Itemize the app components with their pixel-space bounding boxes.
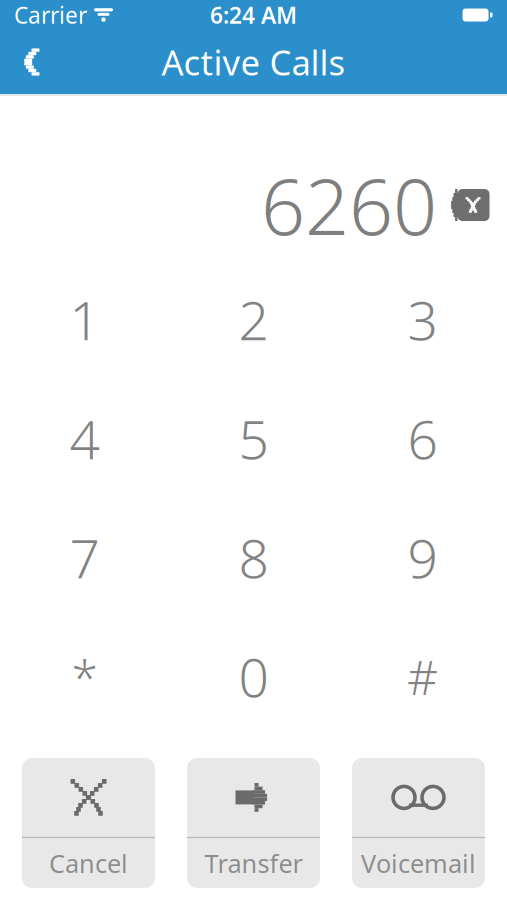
staticText: Carrier — [14, 0, 87, 30]
staticText: 9 — [407, 522, 437, 593]
staticText: Cancel — [49, 846, 128, 880]
button[interactable]: 2 — [169, 260, 338, 379]
staticText: 4 — [69, 403, 99, 474]
button[interactable]: Delete — [437, 177, 499, 233]
staticText: 6 — [407, 403, 437, 474]
button[interactable]: 3 — [338, 260, 507, 379]
staticText: # — [407, 645, 438, 708]
button[interactable]: 1 — [0, 260, 169, 379]
staticText: Voicemail — [361, 846, 476, 880]
staticText: 2 — [238, 284, 268, 355]
button[interactable]: * — [0, 617, 169, 736]
button[interactable]: 8 — [169, 498, 338, 617]
staticText: 3 — [407, 284, 437, 355]
staticText: 6:24 AM — [210, 0, 297, 30]
staticText: 1 — [69, 284, 99, 355]
button[interactable]: Cancel — [22, 758, 155, 888]
staticText: * — [71, 645, 97, 708]
button[interactable]: 9 — [338, 498, 507, 617]
staticText: 7 — [69, 522, 99, 593]
staticText: 0 — [238, 641, 268, 712]
button[interactable]: 5 — [169, 379, 338, 498]
button[interactable]: 4 — [0, 379, 169, 498]
button[interactable]: Transfer — [187, 758, 320, 888]
button[interactable]: 0 — [169, 617, 338, 736]
staticText: 6260 — [261, 154, 437, 256]
staticText: 5 — [238, 403, 268, 474]
button[interactable]: Back — [0, 36, 58, 88]
staticText: Active Calls — [161, 39, 345, 85]
button[interactable]: 6 — [338, 379, 507, 498]
staticText: Transfer — [204, 846, 302, 880]
button[interactable]: 7 — [0, 498, 169, 617]
button[interactable]: # — [338, 617, 507, 736]
button[interactable]: Voicemail — [352, 758, 485, 888]
staticText: 8 — [238, 522, 268, 593]
